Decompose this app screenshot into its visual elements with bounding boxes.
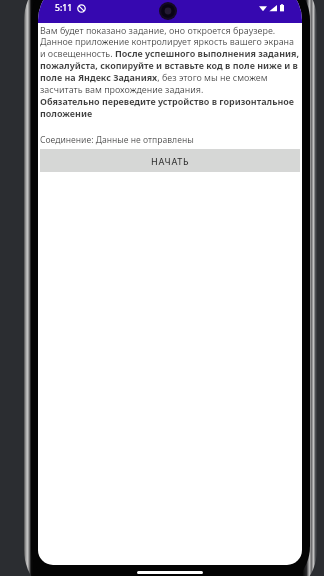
button[interactable]: НАЧАТЬ: [40, 149, 300, 172]
other: Do not disturb: [77, 4, 86, 13]
staticText: НАЧАТЬ: [151, 155, 190, 167]
other: Wi-Fi: [259, 4, 267, 12]
other: Front camera: [159, 2, 177, 20]
staticText: Соединение: Данные не отправлены: [40, 134, 194, 146]
other: Signal: [269, 4, 277, 12]
staticText: Вам будет показано задание, оно откроетс…: [40, 24, 300, 120]
staticText: 5:11: [55, 2, 73, 14]
other: Battery: [280, 4, 284, 12]
